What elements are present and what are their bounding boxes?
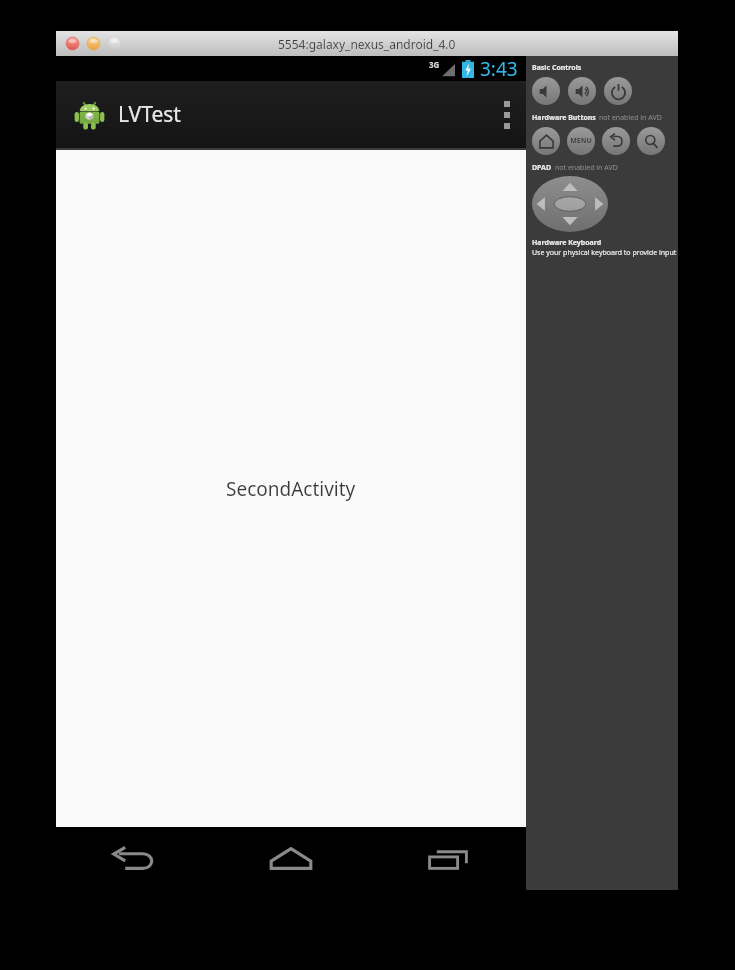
staticText: MENU bbox=[570, 136, 592, 146]
button[interactable]: Recent apps bbox=[369, 827, 526, 890]
button[interactable]: Back bbox=[602, 127, 630, 155]
staticText: SecondActivity bbox=[226, 476, 356, 502]
button[interactable]: Menu bbox=[567, 127, 595, 155]
button[interactable]: D-pad bbox=[532, 176, 608, 232]
button[interactable]: Volume up bbox=[568, 77, 596, 105]
staticText: Use your physical keyboard to provide in… bbox=[532, 248, 677, 258]
button[interactable]: Power bbox=[604, 77, 632, 105]
staticText: Hardware Keyboard bbox=[532, 238, 602, 248]
button[interactable]: Home bbox=[212, 827, 369, 890]
staticText: not enabled in AVD bbox=[599, 113, 662, 123]
button[interactable]: Search bbox=[637, 127, 665, 155]
staticText: LVTest bbox=[118, 100, 181, 129]
button[interactable]: Volume down bbox=[532, 77, 560, 105]
staticText: Hardware Buttons bbox=[532, 113, 596, 123]
staticText: 5554:galaxy_nexus_android_4.0 bbox=[278, 36, 456, 52]
staticText: Basic Controls bbox=[532, 63, 582, 73]
button[interactable]: More options bbox=[488, 81, 526, 148]
staticText: DPAD bbox=[532, 163, 552, 173]
staticText: 3:43 bbox=[480, 56, 518, 81]
staticText: 3G bbox=[429, 59, 440, 70]
button[interactable]: Back bbox=[56, 827, 212, 890]
staticText: not enabled in AVD bbox=[555, 163, 618, 173]
button[interactable]: Home bbox=[532, 127, 560, 155]
